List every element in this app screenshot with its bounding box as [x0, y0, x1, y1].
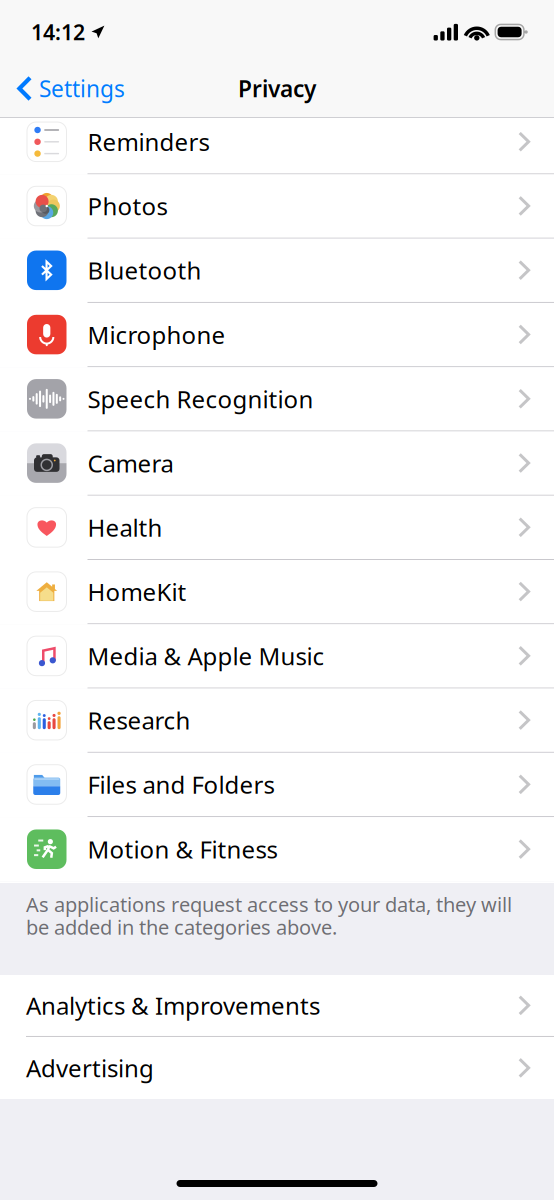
- staticText: Motion & Fitness: [87, 833, 277, 865]
- staticText: Microphone: [87, 319, 225, 350]
- staticText: Bluetooth: [87, 254, 201, 286]
- staticText: HomeKit: [87, 576, 186, 608]
- staticText: 14:12: [31, 18, 85, 46]
- button[interactable]: Microphone: [0, 303, 554, 367]
- staticText: As applications request access to your d…: [26, 891, 512, 918]
- button[interactable]: HomeKit: [0, 560, 554, 624]
- staticText: Settings: [39, 73, 125, 103]
- staticText: Reminders: [87, 126, 209, 158]
- button[interactable]: Settings: [0, 68, 125, 114]
- staticText: Health: [87, 511, 162, 543]
- button[interactable]: Media & Apple Music: [0, 624, 554, 689]
- button[interactable]: Camera: [0, 431, 554, 496]
- button[interactable]: Photos: [0, 174, 554, 239]
- staticText: Camera: [87, 447, 173, 479]
- button[interactable]: Speech Recognition: [0, 367, 554, 431]
- staticText: Privacy: [238, 73, 316, 103]
- staticText: Files and Folders: [87, 768, 274, 800]
- button[interactable]: Motion & Fitness: [0, 817, 554, 881]
- button[interactable]: Bluetooth: [0, 239, 554, 303]
- button[interactable]: Analytics & Improvements: [0, 975, 554, 1037]
- button[interactable]: Health: [0, 496, 554, 560]
- staticText: Media & Apple Music: [87, 640, 324, 672]
- button[interactable]: Reminders: [0, 118, 554, 174]
- staticText: Advertising: [26, 1052, 154, 1084]
- staticText: Research: [87, 704, 190, 736]
- button[interactable]: Research: [0, 689, 554, 753]
- button[interactable]: Files and Folders: [0, 753, 554, 817]
- staticText: be added in the categories above.: [26, 914, 337, 940]
- staticText: Speech Recognition: [87, 383, 313, 415]
- button[interactable]: Advertising: [0, 1037, 554, 1099]
- staticText: Analytics & Improvements: [26, 989, 320, 1021]
- staticText: Photos: [87, 190, 167, 222]
